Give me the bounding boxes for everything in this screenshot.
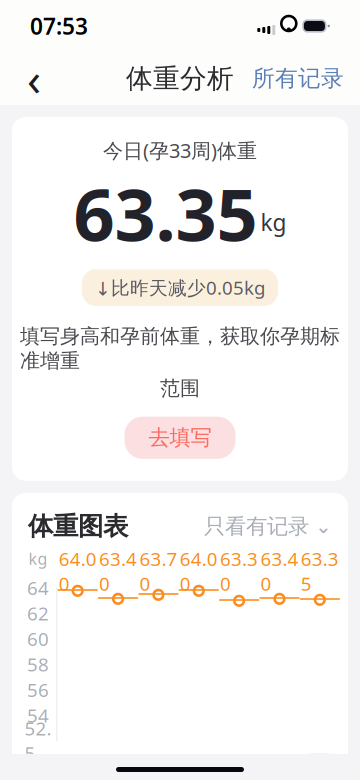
button[interactable]: 所有记录 [248,56,348,100]
staticText: 56 [27,677,49,702]
button[interactable]: 只看有记录 [204,513,332,539]
staticText: 64.00 [59,546,97,596]
staticText: 范围 [160,376,200,401]
staticText: ⌄ [315,515,332,538]
staticText: 64 [27,575,49,600]
staticText: 今日(孕33周)体重 [103,137,257,164]
button[interactable]: 去填写 [124,417,235,459]
staticText: 60 [27,626,49,651]
staticText: 63.30 [220,546,258,596]
staticText: ‹ [27,48,41,109]
staticText: 58 [27,652,49,677]
staticText: 01.16 [221,754,256,780]
staticText: 52.5 [24,716,51,765]
staticText: 所有记录 [252,65,344,92]
button[interactable]: 返回 [12,56,56,100]
staticText: 63.35 [301,546,339,596]
staticText: 体重图表 [28,511,128,542]
staticText: 63.40 [260,546,298,596]
staticText: 63.35 [73,166,257,261]
staticText: 只看有记录 [204,513,309,539]
staticText: 07:53 [30,11,88,41]
staticText: 去填写 [148,425,211,451]
staticText: 62 [27,601,49,626]
staticText: ↓比昨天减少0.05kg [95,275,265,300]
staticText: 体重分析 [126,62,234,95]
staticText: 64.00 [180,546,218,596]
staticText: 01.12 [141,754,176,780]
staticText: kg [28,548,47,569]
staticText: 63.40 [99,546,137,596]
staticText: 63.70 [139,546,177,596]
staticText: 01.15 [181,754,216,780]
staticText: 01.11 [100,754,135,780]
staticText: kg [260,207,286,237]
staticText: 54 [27,703,49,728]
staticText: 填写身高和孕前体重，获取你孕期标准增重 [20,324,340,373]
